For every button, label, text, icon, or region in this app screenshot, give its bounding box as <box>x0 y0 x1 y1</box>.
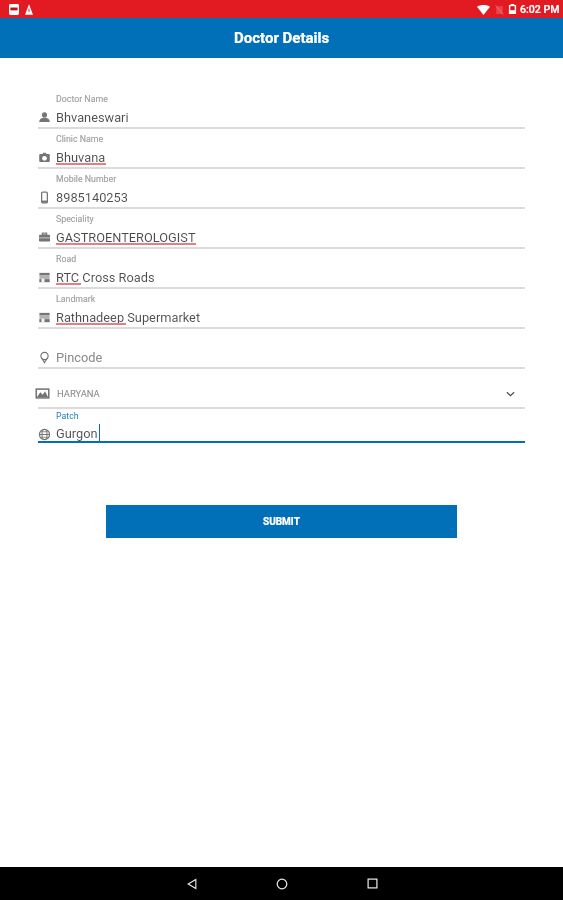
button[interactable]: Mobile Number <box>38 172 525 210</box>
staticText: Clinic Name <box>56 134 104 144</box>
staticText: Speciality <box>56 214 94 224</box>
staticText: Road <box>56 254 77 264</box>
button[interactable]: Back <box>162 867 222 900</box>
staticText: Gurgon <box>56 426 98 441</box>
staticText: 8985140253 <box>56 190 128 205</box>
staticText: Doctor Name <box>56 94 108 104</box>
button[interactable]: Speciality <box>38 212 525 250</box>
staticText: Pincode <box>56 350 103 365</box>
staticText: Mobile Number <box>56 174 117 184</box>
staticText: RTC Cross Roads <box>56 270 155 285</box>
button[interactable]: Clinic Name <box>38 132 525 170</box>
staticText: HARYANA <box>57 388 100 399</box>
staticText: Rathnadeep Supermarket <box>56 310 201 325</box>
button[interactable]: Recent apps <box>342 867 402 900</box>
staticText: GASTROENTEROLOGIST <box>56 230 196 245</box>
button[interactable]: Road <box>38 252 525 290</box>
staticText: Bhuvana <box>56 150 106 165</box>
staticText: 6:02 PM <box>520 3 560 15</box>
button[interactable]: Doctor Name <box>38 92 525 130</box>
button[interactable]: SUBMIT <box>106 505 457 538</box>
button[interactable]: State: HARYANA <box>38 378 525 409</box>
staticText: SUBMIT <box>263 516 300 528</box>
staticText: Bhvaneswari <box>56 110 129 125</box>
button[interactable]: Pincode <box>38 332 525 370</box>
staticText: Doctor Details <box>234 29 330 47</box>
button[interactable]: Home <box>252 867 312 900</box>
staticText: Landmark <box>56 294 96 304</box>
button[interactable]: Patch <box>38 409 525 447</box>
button[interactable]: Landmark <box>38 292 525 330</box>
staticText: Patch <box>56 411 79 421</box>
